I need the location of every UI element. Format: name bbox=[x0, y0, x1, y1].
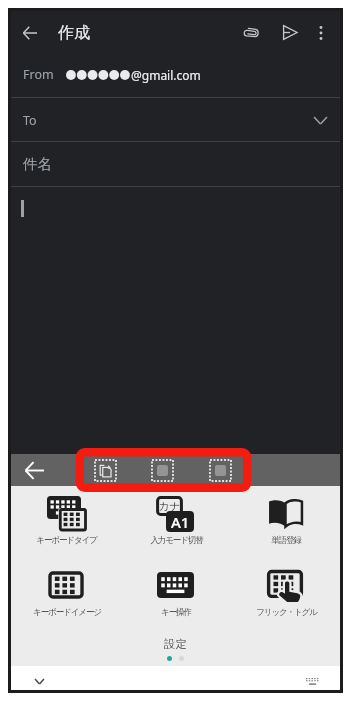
button[interactable]: To bbox=[11, 98, 340, 142]
button[interactable]: フリック・トグル bbox=[230, 567, 340, 618]
button[interactable]: キーボードイメージ bbox=[11, 567, 120, 618]
button[interactable]: キーボードタイプ bbox=[11, 495, 120, 546]
button[interactable]: Copy bbox=[90, 454, 120, 486]
staticText: 作成 bbox=[58, 23, 90, 43]
button[interactable]: カナ bbox=[120, 495, 230, 546]
button[interactable]: Back bbox=[15, 454, 53, 486]
staticText: キー操作 bbox=[161, 607, 191, 618]
button[interactable]: Hide keyboard bbox=[22, 672, 56, 690]
staticText: @gmail.com bbox=[131, 67, 201, 83]
button[interactable]: 件名 bbox=[11, 142, 340, 187]
button[interactable]: Send bbox=[273, 11, 307, 54]
button[interactable]: From bbox=[11, 54, 340, 98]
staticText: キーボードタイプ bbox=[36, 535, 97, 546]
button[interactable]: Change keyboard bbox=[299, 672, 325, 690]
staticText: 件名 bbox=[23, 155, 52, 173]
staticText: キーボードイメージ bbox=[33, 607, 101, 618]
staticText: カナ bbox=[158, 499, 181, 513]
button[interactable]: Paste bbox=[205, 454, 235, 486]
button[interactable]: Cut bbox=[147, 454, 177, 486]
staticText: 単語登録 bbox=[271, 535, 301, 546]
staticText: 設定 bbox=[11, 637, 340, 651]
staticText: From bbox=[23, 66, 54, 83]
button[interactable]: Attach file bbox=[234, 11, 268, 54]
button[interactable]: キー操作 bbox=[120, 567, 230, 618]
staticText: 入力モード切替 bbox=[150, 535, 203, 546]
button[interactable]: More options bbox=[307, 11, 335, 54]
staticText: A1 bbox=[171, 512, 190, 532]
staticText: To bbox=[23, 112, 37, 129]
button[interactable]: Back bbox=[13, 11, 47, 54]
staticText: フリック・トグル bbox=[256, 607, 317, 618]
button[interactable]: 単語登録 bbox=[230, 495, 340, 546]
